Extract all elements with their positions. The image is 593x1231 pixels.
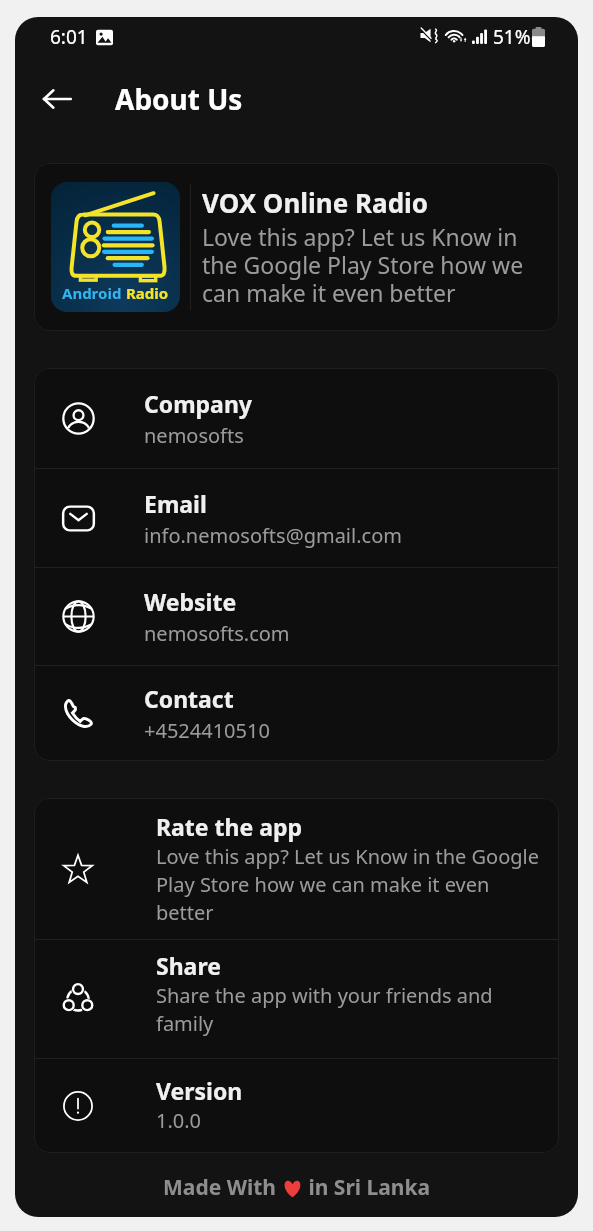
staticText: nemosofts — [144, 422, 244, 449]
button[interactable]: Contact — [34, 666, 559, 761]
staticText: Contact — [144, 683, 234, 714]
staticText: About Us — [115, 80, 243, 118]
staticText: Rate the app — [156, 811, 303, 842]
staticText: Website — [144, 586, 237, 617]
staticText: Love this app? Let us Know in the Google… — [202, 221, 537, 309]
button[interactable]: Android — [34, 163, 559, 331]
staticText: Company — [144, 388, 252, 419]
button[interactable]: Version — [34, 1059, 559, 1153]
staticText: Email — [144, 488, 207, 519]
staticText: 51% — [493, 24, 531, 50]
button[interactable]: Email — [34, 469, 559, 567]
staticText: Android — [62, 283, 126, 303]
button[interactable]: Website — [34, 568, 559, 665]
staticText: Made With — [163, 1173, 282, 1202]
button[interactable]: Share — [34, 940, 559, 1058]
staticText: 1.0.0 — [156, 1107, 202, 1134]
staticText: info.nemosofts@gmail.com — [144, 522, 402, 549]
staticText: nemosofts.com — [144, 620, 290, 647]
button[interactable]: Back — [31, 73, 83, 125]
staticText: Love this app? Let us Know in the Google… — [156, 843, 540, 926]
button[interactable]: Rate the app — [34, 798, 559, 939]
staticText: 6:01 — [50, 24, 88, 50]
staticText: Share — [156, 950, 221, 981]
staticText: Radio — [126, 283, 169, 303]
staticText: in Sri Lanka — [303, 1173, 431, 1202]
button[interactable]: Company — [34, 368, 559, 468]
staticText: +4524410510 — [144, 717, 270, 744]
staticText: Share the app with your friends and fami… — [156, 982, 540, 1037]
staticText: VOX Online Radio — [202, 185, 429, 220]
staticText: Version — [156, 1075, 243, 1106]
